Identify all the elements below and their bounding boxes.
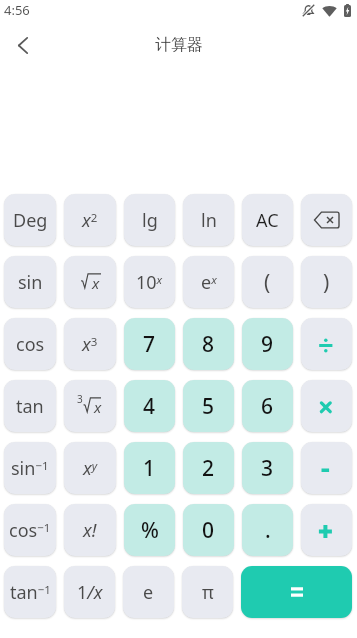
button[interactable]: 2	[183, 442, 234, 494]
staticText: sin	[18, 270, 43, 295]
button[interactable]: Back	[4, 26, 42, 64]
staticText: %	[141, 516, 159, 545]
staticText: 3	[77, 392, 83, 406]
button[interactable]: 5	[183, 380, 234, 432]
staticText: x	[92, 273, 100, 293]
button[interactable]: tan−1	[4, 566, 56, 618]
staticText: x	[94, 397, 102, 417]
button[interactable]: x3	[64, 318, 116, 370]
staticText: 1	[143, 454, 156, 483]
staticText: sin−1	[11, 456, 49, 481]
button[interactable]: x	[64, 256, 116, 308]
staticText: π	[202, 580, 214, 605]
staticText: cos	[16, 332, 45, 357]
staticText: 8	[202, 330, 215, 359]
button[interactable]: Minus	[301, 442, 352, 494]
staticText: x3	[82, 332, 98, 357]
button[interactable]: 8	[183, 318, 234, 370]
button[interactable]: cos	[4, 318, 56, 370]
staticText: )	[323, 268, 330, 297]
staticText: (	[264, 268, 271, 297]
button[interactable]: ex	[183, 256, 234, 308]
staticText: xy	[83, 456, 98, 481]
staticText: x!	[83, 518, 97, 543]
staticText: .	[265, 516, 271, 545]
button[interactable]: Plus	[301, 504, 352, 556]
button[interactable]: AC	[242, 194, 293, 246]
button[interactable]: Deg	[4, 194, 56, 246]
button[interactable]: x2	[64, 194, 116, 246]
button[interactable]: Backspace	[301, 194, 352, 246]
staticText: e	[143, 580, 154, 605]
button[interactable]: 4	[124, 380, 175, 432]
button[interactable]: 6	[242, 380, 293, 432]
staticText: AC	[256, 208, 279, 233]
staticText: tan	[16, 394, 44, 419]
button[interactable]: sin	[4, 256, 56, 308]
button[interactable]: 1	[124, 442, 175, 494]
staticText: 6	[261, 392, 274, 421]
button[interactable]: )	[301, 256, 352, 308]
button[interactable]: 3	[242, 442, 293, 494]
staticText: tan−1	[10, 580, 51, 605]
button[interactable]: (	[242, 256, 293, 308]
staticText: Deg	[13, 208, 48, 233]
button[interactable]: Equals	[241, 566, 352, 618]
button[interactable]: π	[182, 566, 233, 618]
button[interactable]: 0	[183, 504, 234, 556]
button[interactable]: x!	[64, 504, 116, 556]
button[interactable]: 1/x	[64, 566, 115, 618]
staticText: cos−1	[9, 518, 51, 543]
staticText: ex	[201, 270, 217, 295]
button[interactable]: 9	[242, 318, 293, 370]
staticText: 4:56	[4, 1, 30, 19]
staticText: 5	[202, 392, 215, 421]
staticText: lg	[142, 208, 158, 233]
other: Backspace	[314, 211, 339, 229]
staticText: 3	[261, 454, 274, 483]
staticText: 10x	[136, 270, 163, 295]
button[interactable]: tan	[4, 380, 56, 432]
button[interactable]: 10x	[124, 256, 175, 308]
staticText: 4	[143, 392, 156, 421]
button[interactable]: sin−1	[4, 442, 56, 494]
button[interactable]: 7	[124, 318, 175, 370]
staticText: 1/x	[77, 580, 103, 605]
button[interactable]: ln	[183, 194, 234, 246]
button[interactable]: xy	[64, 442, 116, 494]
staticText: x2	[82, 208, 98, 233]
button[interactable]: lg	[124, 194, 175, 246]
staticText: 7	[143, 330, 156, 359]
button[interactable]: cos−1	[4, 504, 56, 556]
staticText: 2	[202, 454, 215, 483]
button[interactable]: .	[242, 504, 293, 556]
staticText: 9	[261, 330, 274, 359]
button[interactable]: Divide	[301, 318, 352, 370]
staticText: ln	[201, 208, 217, 233]
button[interactable]: Multiply	[301, 380, 352, 432]
staticText: 计算器	[155, 35, 203, 55]
button[interactable]: %	[124, 504, 175, 556]
button[interactable]: e	[123, 566, 174, 618]
staticText: 0	[202, 516, 215, 545]
button[interactable]: x	[64, 380, 116, 432]
